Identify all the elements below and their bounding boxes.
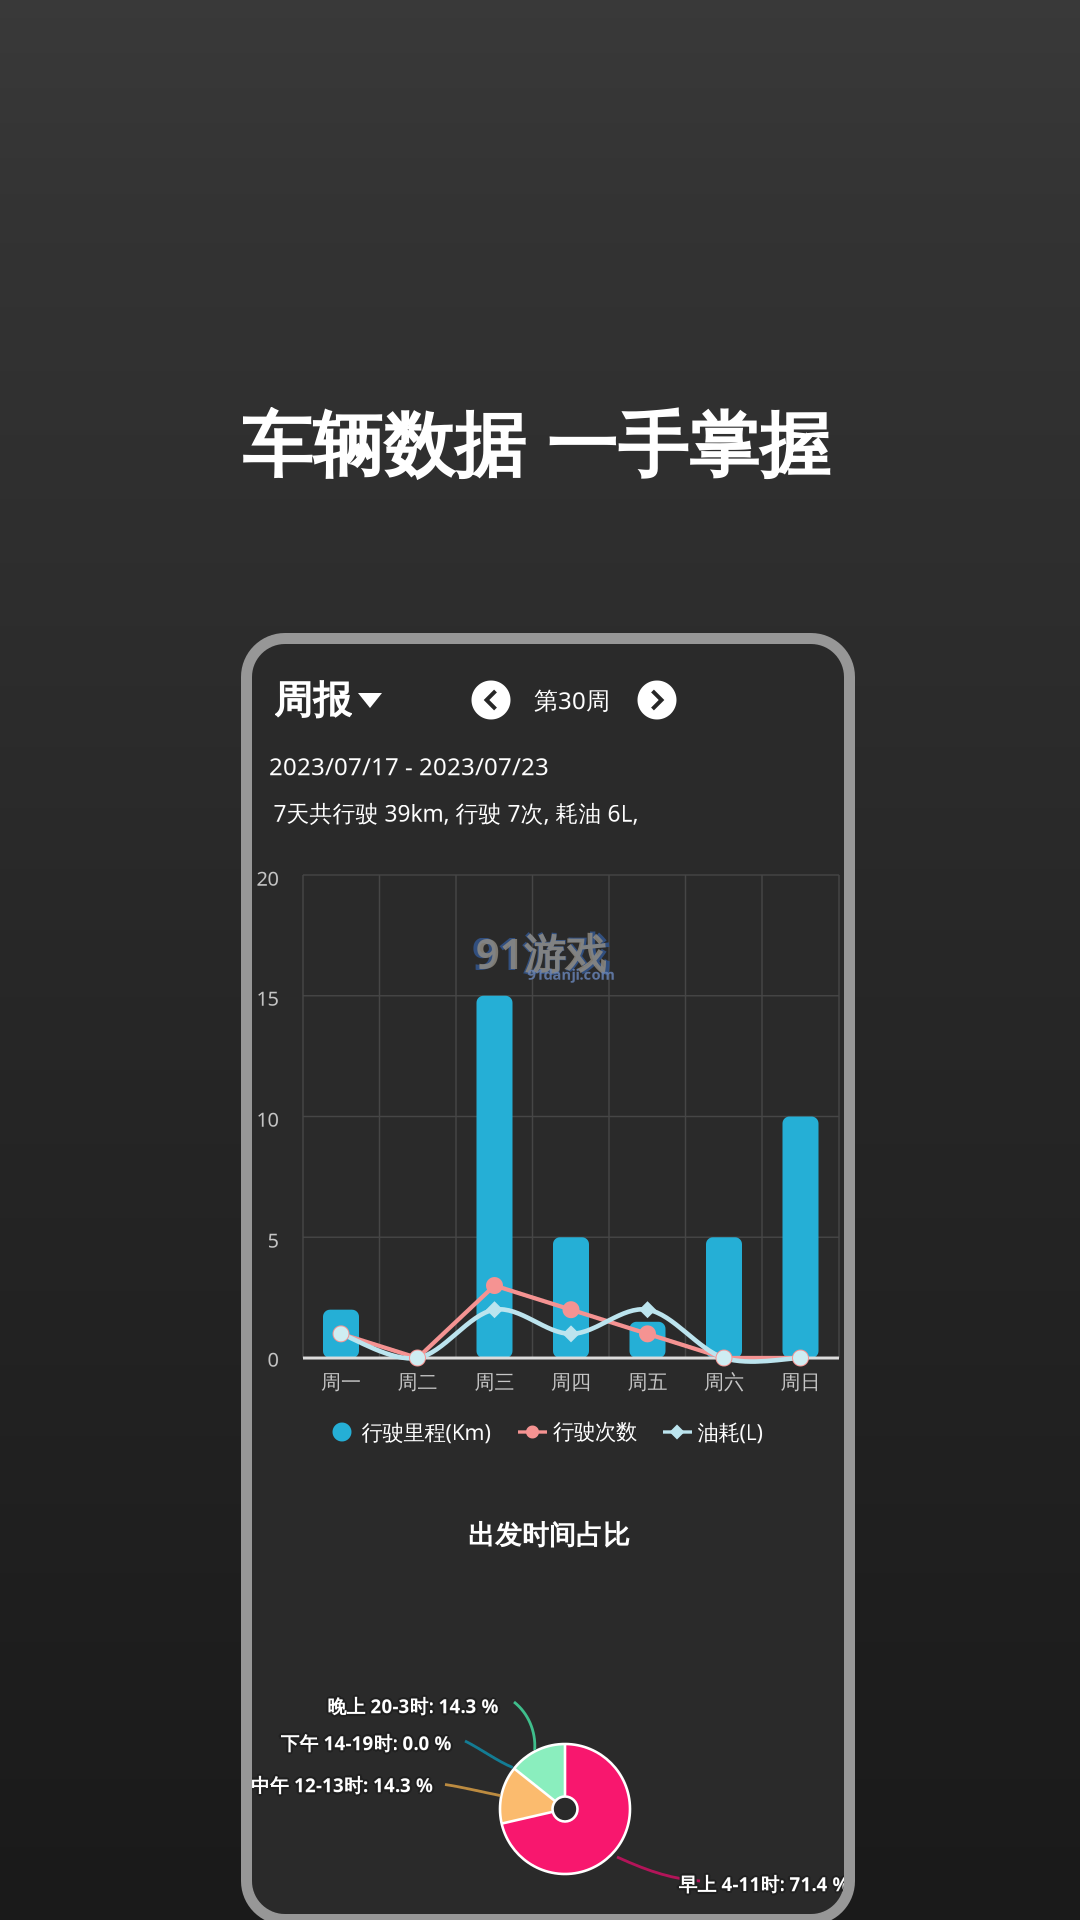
staticText: 20 [256, 865, 278, 891]
staticText: 中午 12-13时: 14.3 % [251, 1770, 433, 1795]
staticText: 晚上 20-3时: 14.3 % [326, 1692, 497, 1717]
staticText: 中午 12-13时: 14.3 % [253, 1774, 435, 1799]
staticText: 晚上 20-3时: 14.3 % [326, 1695, 497, 1720]
staticText: 早上 4-11时: 71.4 % [681, 1872, 852, 1896]
staticText: 周六 [704, 1370, 744, 1394]
staticText: 下午 14-19时: 0.0 % [278, 1731, 449, 1755]
staticText: 早上 4-11时: 71.4 % [677, 1873, 848, 1898]
staticText: 中午 12-13时: 14.3 % [249, 1774, 431, 1799]
staticText: 下午 14-19时: 0.0 % [282, 1732, 453, 1757]
staticText: 中午 12-13时: 14.3 % [249, 1771, 431, 1796]
staticText: 下午 14-19时: 0.0 % [280, 1733, 451, 1758]
staticText: 早上 4-11时: 71.4 % [680, 1870, 851, 1895]
staticText: 周日 [780, 1370, 820, 1394]
staticText: 车辆数据 一手掌握 [241, 403, 830, 489]
staticText: 晚上 20-3时: 14.3 % [327, 1694, 498, 1718]
staticText: 行驶里程(Km) [361, 1418, 490, 1446]
staticText: 周二 [397, 1370, 437, 1394]
button[interactable]: 上一周 [0, 0, 1080, 1920]
staticText: 早上 4-11时: 71.4 % [680, 1873, 851, 1898]
staticText: 2023/07/17 - 2023/07/23 [269, 750, 549, 782]
staticText: 7天共行驶 39km, 行驶 7次, 耗油 6L, [273, 798, 638, 828]
staticText: 91游戏 [472, 924, 610, 982]
staticText: 中午 12-13时: 14.3 % [249, 1773, 431, 1797]
staticText: 早上 4-11时: 71.4 % [678, 1874, 849, 1899]
staticText: 晚上 20-3时: 14.3 % [327, 1691, 498, 1716]
staticText: 周四 [551, 1370, 591, 1394]
staticText: 91danji.com [527, 964, 614, 984]
button[interactable]: 周报 [0, 0, 1080, 1920]
staticText: 中午 12-13时: 14.3 % [251, 1775, 433, 1800]
staticText: 中午 12-13时: 14.3 % [253, 1771, 435, 1796]
staticText: 早上 4-11时: 71.4 % [676, 1872, 847, 1896]
staticText: 早上 4-11时: 71.4 % [677, 1870, 848, 1895]
staticText: 周三 [474, 1370, 514, 1394]
staticText: 行驶次数 [553, 1419, 637, 1445]
button[interactable]: 下一周 [0, 0, 1080, 1920]
staticText: 5 [267, 1227, 278, 1253]
staticText: 下午 14-19时: 0.0 % [279, 1729, 450, 1754]
staticText: 周报 [274, 676, 352, 724]
staticText: 中午 12-13时: 14.3 % [253, 1773, 435, 1797]
staticText: 10 [256, 1106, 278, 1132]
staticText: 下午 14-19时: 0.0 % [282, 1729, 453, 1754]
staticText: 晚上 20-3时: 14.3 % [327, 1696, 498, 1721]
staticText: 下午 14-19时: 0.0 % [279, 1732, 450, 1757]
staticText: 早上 4-11时: 71.4 % [678, 1869, 849, 1894]
staticText: 15 [256, 985, 278, 1011]
staticText: 出发时间占比 [468, 1519, 630, 1551]
staticText: 油耗(L) [697, 1418, 762, 1446]
staticText: 下午 14-19时: 0.0 % [280, 1728, 451, 1753]
staticText: 早上 4-11时: 71.4 % [678, 1872, 849, 1896]
staticText: 晚上 20-3时: 14.3 % [330, 1694, 501, 1718]
staticText: 0 [267, 1346, 278, 1372]
staticText: 下午 14-19时: 0.0 % [283, 1731, 454, 1755]
staticText: 晚上 20-3时: 14.3 % [325, 1694, 496, 1718]
staticText: 晚上 20-3时: 14.3 % [329, 1692, 500, 1717]
staticText: 下午 14-19时: 0.0 % [280, 1731, 451, 1755]
staticText: 周一 [321, 1370, 361, 1394]
staticText: 第30周 [534, 684, 610, 716]
staticText: 中午 12-13时: 14.3 % [251, 1773, 433, 1797]
staticText: 91游戏 [476, 926, 606, 980]
staticText: 周五 [627, 1370, 667, 1394]
staticText: 晚上 20-3时: 14.3 % [329, 1695, 500, 1720]
